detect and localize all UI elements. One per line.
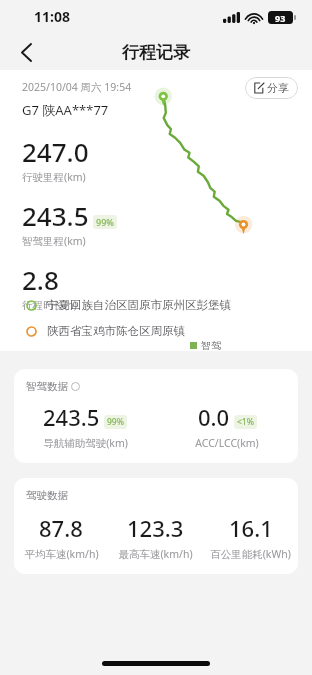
staticText: 导航辅助驾驶(km)	[43, 436, 128, 450]
staticText: 243.5	[43, 402, 100, 432]
staticText: 宁夏回族自治区固原市原州区彭堡镇	[47, 298, 231, 312]
staticText: 驾驶数据	[26, 489, 68, 502]
staticText: 行程时长(h)	[22, 298, 77, 312]
staticText: 99%	[96, 216, 114, 228]
staticText: 99%	[107, 416, 124, 428]
staticText: 11:08	[34, 7, 70, 26]
button[interactable]: Back	[8, 34, 44, 70]
staticText: 最高车速(km/h)	[118, 547, 193, 561]
staticText: 智驾里程(km)	[22, 234, 86, 248]
staticText: 智驾数据	[26, 380, 68, 393]
staticText: 平均车速(km/h)	[24, 547, 99, 561]
staticText: ACC/LCC(km)	[195, 436, 259, 450]
staticText: 智驾	[201, 339, 221, 352]
staticText: G7 陕AA***77	[22, 101, 109, 119]
staticText: 百公里能耗(kWh)	[210, 547, 291, 561]
staticText: 87.8	[39, 513, 83, 543]
button[interactable]: 智驾数据	[14, 369, 298, 463]
staticText: 0.0	[198, 402, 230, 432]
staticText: 行程记录	[122, 42, 190, 63]
staticText: 2025/10/04 周六 19:54	[22, 80, 132, 94]
staticText: <1%	[237, 416, 254, 428]
staticText: 123.3	[127, 513, 184, 543]
staticText: 243.5	[22, 198, 89, 233]
staticText: 分享	[267, 81, 289, 95]
staticText: 247.0	[22, 134, 89, 169]
staticText: 行驶里程(km)	[22, 170, 86, 184]
button[interactable]: 驾驶数据	[14, 478, 298, 574]
staticText: 2.8	[22, 262, 59, 297]
staticText: 93	[275, 12, 286, 24]
staticText: 16.1	[229, 513, 273, 543]
staticText: 陕西省宝鸡市陈仓区周原镇	[47, 324, 185, 338]
button[interactable]: 分享	[245, 77, 298, 99]
